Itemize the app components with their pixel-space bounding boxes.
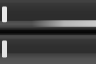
button[interactable]: Belkin charging cables <box>0 0 96 64</box>
